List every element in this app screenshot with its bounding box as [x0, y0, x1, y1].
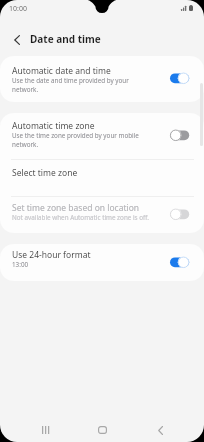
staticText: Not available when Automatic time zone i…: [12, 213, 149, 222]
button[interactable]: Select time zone: [0, 160, 204, 196]
button[interactable]: Navigate up: [6, 29, 27, 50]
button[interactable]: Automatic date and time: [0, 56, 204, 102]
staticText: Set time zone based on location: [12, 202, 140, 214]
staticText: Select time zone: [12, 167, 78, 179]
button[interactable]: Toggle: [170, 73, 190, 85]
button[interactable]: Use 24-hour format: [0, 244, 204, 281]
button[interactable]: Home: [88, 420, 116, 440]
staticText: Automatic time zone: [12, 120, 95, 132]
staticText: 10:00: [9, 4, 27, 14]
staticText: Automatic date and time: [12, 65, 111, 77]
button[interactable]: Set time zone based on location: [0, 197, 204, 233]
button[interactable]: Automatic time zone: [0, 113, 204, 159]
button[interactable]: Toggle: [170, 209, 190, 221]
button[interactable]: Toggle: [170, 130, 190, 142]
staticText: Use the time zone provided by your mobil…: [12, 131, 152, 149]
button[interactable]: Back: [146, 420, 174, 440]
staticText: Use the date and time provided by your n…: [12, 76, 152, 94]
button[interactable]: Toggle: [170, 257, 190, 269]
staticText: Date and time: [30, 32, 101, 46]
staticText: Use 24-hour format: [12, 249, 91, 261]
staticText: 13:00: [12, 260, 29, 269]
button[interactable]: Recent apps: [32, 420, 60, 440]
